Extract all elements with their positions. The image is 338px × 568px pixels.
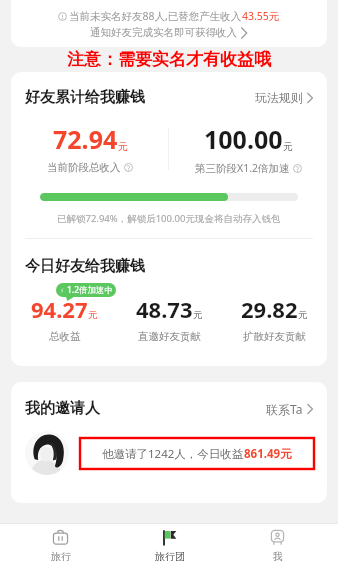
button[interactable]: 旅行团: [122, 523, 217, 568]
staticText: 94.27: [31, 294, 88, 324]
staticText: 43.55元: [242, 9, 280, 23]
staticText: 861.49元: [244, 446, 292, 462]
staticText: 1.2倍加速中: [67, 284, 114, 296]
button[interactable]: 我: [230, 523, 325, 568]
button[interactable]: 玩法规则: [255, 90, 314, 105]
staticText: 元: [118, 140, 128, 153]
staticText: 当前未实名好友88人,已替您产生收入: [69, 9, 242, 23]
staticText: 直邀好友贡献: [138, 330, 201, 343]
staticText: 我: [273, 550, 283, 563]
staticText: 当前阶段总收入: [47, 161, 121, 174]
staticText: 元: [283, 140, 293, 153]
staticText: 我的邀请人: [25, 399, 100, 418]
staticText: 旅行团: [155, 550, 185, 563]
staticText: 元: [88, 309, 98, 321]
staticText: 今日好友给我赚钱: [25, 257, 145, 276]
button[interactable]: 联系Ta: [266, 401, 314, 417]
staticText: 已解锁72.94%，解锁后100.00元现金将自动存入钱包: [57, 212, 281, 225]
staticText: 联系Ta: [266, 401, 303, 417]
staticText: 总收益: [49, 330, 81, 343]
staticText: 好友累计给我赚钱: [25, 88, 145, 107]
staticText: 元: [298, 309, 308, 321]
staticText: 玩法规则: [255, 90, 303, 105]
button[interactable]: 旅行: [13, 523, 108, 568]
staticText: 旅行: [51, 550, 71, 563]
staticText: 扩散好友贡献: [243, 330, 306, 343]
staticText: 元: [193, 309, 203, 321]
staticText: 通知好友完成实名即可获得收入: [90, 26, 237, 39]
staticText: 他邀请了1242人，今日收益: [102, 446, 244, 462]
staticText: 第三阶段X1.2倍加速: [195, 161, 290, 175]
button[interactable]: 他邀请了1242人，今日收益: [80, 438, 314, 469]
staticText: 48.73: [136, 294, 193, 324]
staticText: 29.82: [241, 294, 298, 324]
staticText: 注意：需要实名才有收益哦: [67, 49, 271, 70]
staticText: 72.94: [53, 122, 118, 156]
staticText: 100.00: [204, 122, 283, 156]
button[interactable]: 当前未实名好友88人,已替您产生收入: [11, 0, 327, 47]
